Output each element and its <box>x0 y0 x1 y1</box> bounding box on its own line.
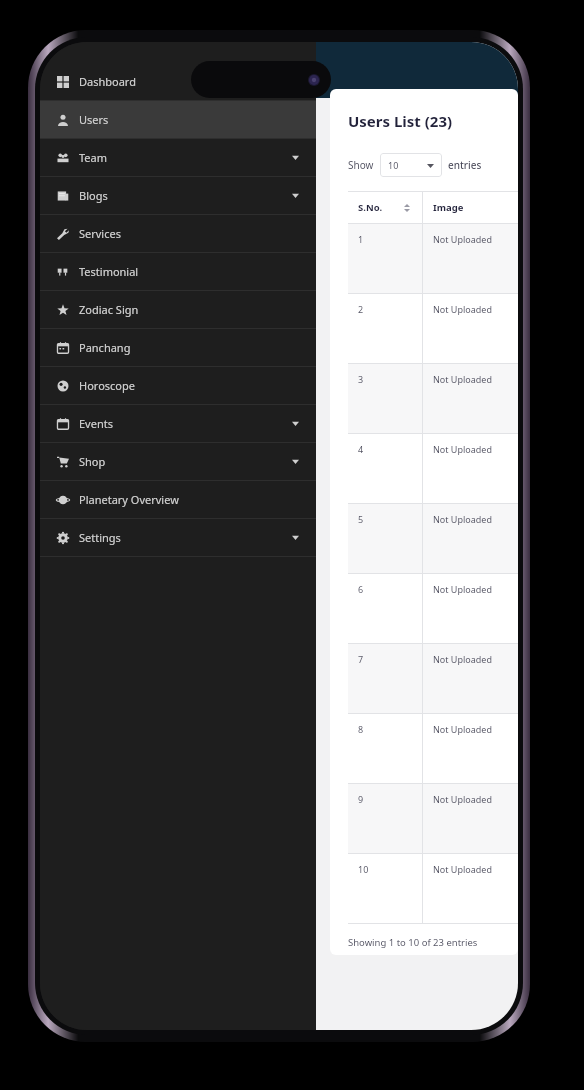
button[interactable]: Services <box>40 215 316 252</box>
staticText: entries <box>448 158 482 172</box>
staticText: 2 <box>358 303 364 315</box>
button[interactable]: Panchang <box>40 329 316 366</box>
button[interactable]: 10 <box>380 153 442 177</box>
staticText: Image <box>433 201 464 214</box>
staticText: Blogs <box>79 188 108 203</box>
staticText: Not Uploaded <box>433 303 492 315</box>
staticText: Planetary Overview <box>79 492 179 507</box>
button[interactable]: Settings <box>40 519 316 556</box>
staticText: Not Uploaded <box>433 583 492 595</box>
button[interactable]: 8 <box>348 714 518 783</box>
button[interactable]: Zodiac Sign <box>40 291 316 328</box>
staticText: 5 <box>358 513 364 525</box>
button[interactable]: Team <box>40 139 316 176</box>
button[interactable]: 5 <box>348 504 518 573</box>
button[interactable]: Shop <box>40 443 316 480</box>
staticText: Settings <box>79 530 121 545</box>
staticText: 6 <box>358 583 364 595</box>
staticText: Not Uploaded <box>433 233 492 245</box>
button[interactable]: 2 <box>348 294 518 363</box>
staticText: Not Uploaded <box>433 653 492 665</box>
staticText: Shop <box>79 454 106 469</box>
button[interactable]: 7 <box>348 644 518 713</box>
staticText: Horoscope <box>79 378 135 393</box>
staticText: S.No. <box>358 201 383 214</box>
button[interactable]: Horoscope <box>40 367 316 404</box>
staticText: Not Uploaded <box>433 863 492 875</box>
button[interactable]: 6 <box>348 574 518 643</box>
staticText: 7 <box>358 653 364 665</box>
staticText: Not Uploaded <box>433 373 492 385</box>
staticText: Panchang <box>79 340 131 355</box>
button[interactable]: Events <box>40 405 316 442</box>
staticText: Users <box>79 112 109 127</box>
button[interactable]: S.No. <box>348 192 518 223</box>
staticText: Not Uploaded <box>433 443 492 455</box>
staticText: 1 <box>358 233 364 245</box>
staticText: Dashboard <box>79 74 136 89</box>
staticText: Not Uploaded <box>433 513 492 525</box>
staticText: Showing 1 to 10 of 23 entries <box>348 936 478 949</box>
staticText: Zodiac Sign <box>79 302 139 317</box>
button[interactable]: 9 <box>348 784 518 853</box>
staticText: 9 <box>358 793 364 805</box>
staticText: Show <box>348 158 374 172</box>
staticText: Not Uploaded <box>433 723 492 735</box>
button[interactable]: 4 <box>348 434 518 503</box>
staticText: Services <box>79 226 121 241</box>
staticText: 8 <box>358 723 364 735</box>
staticText: Users List (23) <box>348 111 453 131</box>
button[interactable]: Blogs <box>40 177 316 214</box>
staticText: 4 <box>358 443 364 455</box>
button[interactable]: Dashboard <box>40 63 316 100</box>
button[interactable]: 1 <box>348 224 518 293</box>
staticText: Not Uploaded <box>433 793 492 805</box>
button[interactable]: Testimonial <box>40 253 316 290</box>
staticText: 10 <box>388 159 399 171</box>
button[interactable]: Planetary Overview <box>40 481 316 518</box>
staticText: Testimonial <box>79 264 139 279</box>
staticText: 3 <box>358 373 364 385</box>
button[interactable]: 3 <box>348 364 518 433</box>
button[interactable]: Users <box>40 101 316 138</box>
staticText: 10 <box>358 863 369 875</box>
staticText: Team <box>79 150 108 165</box>
staticText: Events <box>79 416 113 431</box>
button[interactable]: 10 <box>348 854 518 923</box>
